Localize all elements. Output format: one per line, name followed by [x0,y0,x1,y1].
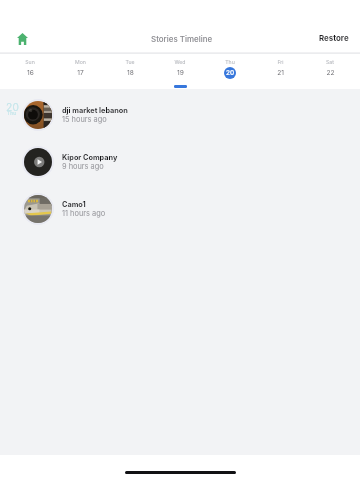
staticText: Tue [125,59,135,65]
button[interactable]: Home [6,27,38,51]
staticText: 16 [27,69,34,77]
staticText: 19 [177,69,184,77]
staticText: Thu [225,59,235,65]
staticText: 9 hours ago [62,162,104,171]
staticText: dji market lebanon [62,106,128,115]
button[interactable]: Fri [255,54,305,89]
button[interactable]: Mon [55,54,105,89]
button[interactable]: Camo1 [0,185,360,232]
staticText: Restore [319,33,349,43]
staticText: Mon [75,59,86,65]
staticText: 20 [226,69,235,77]
button[interactable]: Tue [105,54,155,89]
staticText: 17 [77,69,84,77]
button[interactable]: Restore [307,25,360,51]
button[interactable]: Sun [5,54,55,89]
button[interactable]: Kipor Company [0,138,360,185]
staticText: 18 [127,69,134,77]
staticText: 11 hours ago [62,209,106,218]
staticText: Sun [25,59,35,65]
staticText: Wed [174,59,186,65]
button[interactable]: Wed [155,54,205,89]
button[interactable]: Sat [305,54,355,89]
staticText: 22 [326,69,335,77]
staticText: Kipor Company [62,153,118,162]
staticText: Thu [7,110,17,116]
staticText: 15 hours ago [62,115,107,124]
staticText: Camo1 [62,200,86,209]
staticText: Sat [326,59,334,65]
staticText: Fri [277,59,284,65]
staticText: 20 [6,101,19,114]
staticText: 21 [277,69,284,77]
staticText: Stories Timeline [151,34,213,44]
button[interactable]: Thu [205,54,255,89]
button[interactable]: 20 [0,91,360,138]
